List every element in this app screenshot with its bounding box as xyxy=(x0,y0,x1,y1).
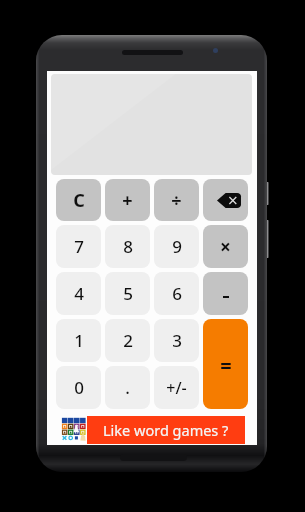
button[interactable]: +/- xyxy=(154,366,199,409)
button[interactable]: 3 xyxy=(154,319,199,362)
button[interactable]: 0 xyxy=(56,366,101,409)
button[interactable]: + xyxy=(105,179,150,221)
button[interactable]: Like word games ? xyxy=(61,416,245,444)
staticText: + xyxy=(122,188,133,213)
button[interactable]: × xyxy=(203,225,248,268)
staticText: 4 xyxy=(74,282,84,305)
button[interactable]: = xyxy=(203,319,248,409)
staticText: Like word games ? xyxy=(103,420,229,440)
button[interactable]: . xyxy=(105,366,150,409)
staticText: 0 xyxy=(74,376,84,399)
staticText: ÷ xyxy=(171,188,182,213)
button[interactable]: 2 xyxy=(105,319,150,362)
staticText: = xyxy=(220,352,232,379)
button[interactable]: 1 xyxy=(56,319,101,362)
button[interactable]: Minus xyxy=(203,272,248,315)
button[interactable]: 6 xyxy=(154,272,199,315)
staticText: 7 xyxy=(74,235,84,258)
button[interactable]: 7 xyxy=(56,225,101,268)
button[interactable]: 8 xyxy=(105,225,150,268)
staticText: 5 xyxy=(123,282,133,305)
staticText: 8 xyxy=(123,235,133,258)
staticText: . xyxy=(125,376,130,399)
staticText: 9 xyxy=(172,235,182,258)
staticText: C xyxy=(73,188,85,213)
staticText: 1 xyxy=(74,329,84,352)
staticText: 2 xyxy=(123,329,133,352)
staticText: +/- xyxy=(166,377,187,399)
button[interactable]: ÷ xyxy=(154,179,199,221)
button[interactable]: C xyxy=(56,179,101,221)
button[interactable]: 4 xyxy=(56,272,101,315)
button[interactable]: Backspace xyxy=(203,179,248,221)
button[interactable]: 9 xyxy=(154,225,199,268)
staticText: × xyxy=(220,234,231,260)
staticText: 6 xyxy=(172,282,182,305)
staticText: 3 xyxy=(172,329,182,352)
button[interactable]: 5 xyxy=(105,272,150,315)
